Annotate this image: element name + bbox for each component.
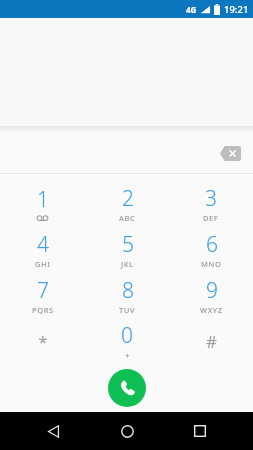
staticText: 2: [122, 184, 134, 213]
button[interactable]: 0: [85, 318, 169, 364]
staticText: ABC: [119, 213, 136, 223]
button[interactable]: Call: [108, 369, 146, 407]
staticText: 7: [37, 276, 49, 305]
staticText: MNO: [201, 259, 222, 269]
staticText: #: [206, 330, 217, 353]
button[interactable]: 4: [0, 226, 85, 272]
staticText: WXYZ: [200, 305, 223, 315]
button[interactable]: 6: [169, 226, 253, 272]
staticText: PQRS: [32, 305, 54, 315]
button[interactable]: 3: [169, 180, 253, 226]
staticText: JKL: [121, 259, 134, 269]
button[interactable]: 2: [85, 180, 169, 226]
staticText: 19:21: [224, 3, 249, 16]
staticText: 9: [206, 276, 218, 305]
button[interactable]: 7: [0, 272, 85, 318]
button[interactable]: 8: [85, 272, 169, 318]
staticText: TUV: [119, 305, 136, 315]
staticText: 6: [206, 230, 218, 259]
button[interactable]: Back: [33, 412, 73, 450]
staticText: 4: [37, 230, 49, 259]
staticText: *: [38, 330, 48, 353]
button[interactable]: 1: [0, 180, 85, 226]
button[interactable]: 5: [85, 226, 169, 272]
staticText: 0: [121, 321, 133, 350]
button[interactable]: #: [169, 318, 253, 364]
staticText: GHI: [35, 259, 51, 269]
staticText: 4G: [186, 4, 197, 15]
staticText: DEF: [203, 213, 219, 223]
button[interactable]: 9: [169, 272, 253, 318]
button[interactable]: *: [0, 318, 85, 364]
staticText: 8: [122, 276, 134, 305]
staticText: 1: [37, 185, 49, 214]
staticText: 5: [122, 230, 134, 259]
button[interactable]: Recents: [180, 412, 220, 450]
button[interactable]: Backspace: [215, 140, 245, 166]
button[interactable]: Home: [107, 412, 147, 450]
staticText: 3: [205, 184, 217, 213]
staticText: +: [125, 350, 130, 361]
